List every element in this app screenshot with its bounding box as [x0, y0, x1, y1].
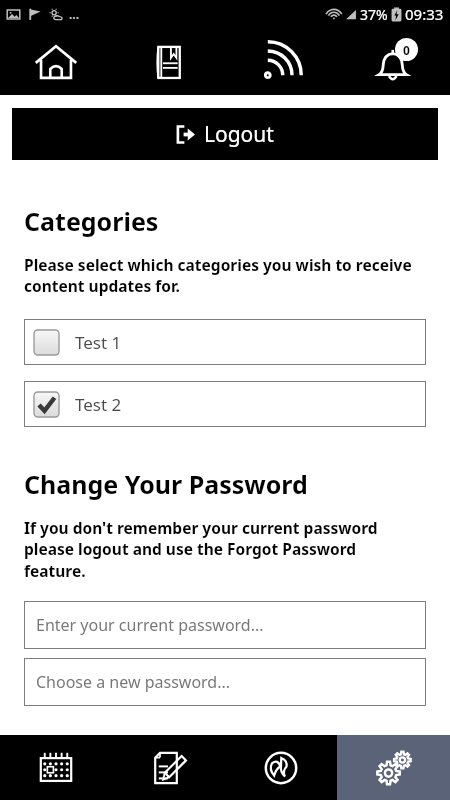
button[interactable]: Calendar [0, 735, 112, 800]
staticText: Enter your current password... [36, 614, 264, 636]
staticText: Please select which categories you wish … [24, 254, 428, 297]
staticText: 09:33 [405, 4, 444, 24]
staticText: 37% [360, 5, 388, 24]
staticText: Categories [24, 204, 159, 238]
button[interactable]: Notes [112, 735, 224, 800]
staticText: Choose a new password... [36, 671, 231, 693]
button[interactable]: Test 2 [24, 381, 426, 427]
button[interactable]: Web [224, 735, 337, 800]
button[interactable]: Library [112, 28, 224, 95]
staticText: 0 [403, 42, 410, 58]
staticText: Logout [204, 120, 274, 149]
staticText: ... [69, 6, 80, 22]
button[interactable]: Settings [337, 735, 450, 800]
button[interactable]: Logout [12, 108, 438, 160]
button[interactable]: Feed [224, 28, 337, 95]
staticText: If you don't remember your current passw… [24, 517, 396, 582]
button[interactable]: Test 1 [24, 319, 426, 365]
button[interactable]: Choose a new password... [24, 658, 426, 706]
button[interactable]: Notifications [337, 28, 450, 95]
staticText: Test 2 [75, 393, 122, 416]
button[interactable]: Home [0, 28, 112, 95]
button[interactable]: Enter your current password... [24, 601, 426, 649]
staticText: Change Your Password [24, 467, 308, 501]
staticText: Test 1 [75, 331, 122, 354]
